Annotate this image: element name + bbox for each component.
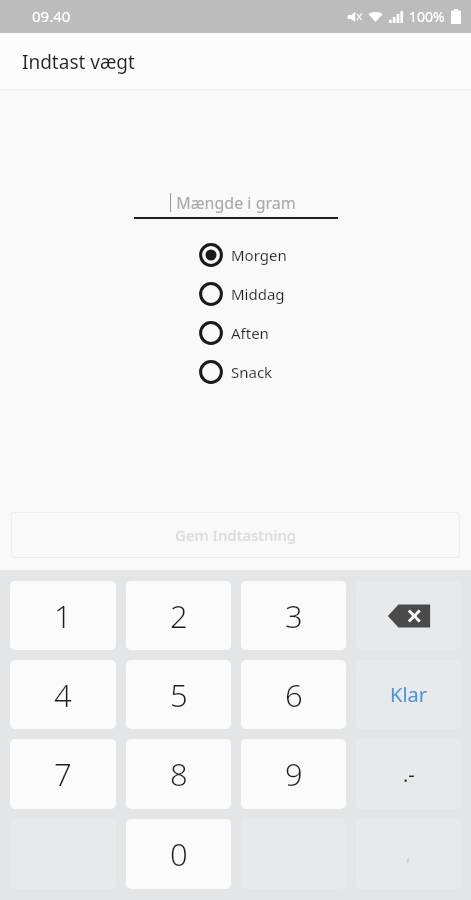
button[interactable]: Mængde i gram (134, 188, 338, 217)
staticText: 100% (409, 7, 445, 26)
button[interactable]: 5 (126, 660, 231, 729)
button[interactable]: 8 (126, 739, 231, 809)
staticText: Mængde i gram (176, 192, 296, 214)
staticText: .- (403, 761, 415, 788)
button[interactable]: 0 (126, 819, 231, 889)
button[interactable]: Morgen (0, 235, 471, 274)
button[interactable]: Aften (0, 313, 471, 352)
button[interactable]: Snack (0, 352, 471, 391)
staticText: 1 (54, 595, 72, 637)
staticText: 3 (285, 595, 303, 637)
button[interactable]: 4 (10, 660, 116, 729)
staticText: Morgen (231, 245, 287, 265)
staticText: 4 (54, 674, 72, 716)
staticText: Klar (390, 681, 428, 708)
staticText: Middag (231, 284, 285, 304)
staticText: Indtast vægt (22, 49, 135, 75)
staticText: 6 (285, 674, 303, 716)
staticText: Gem Indtastning (175, 525, 297, 545)
staticText: 09.40 (32, 6, 71, 26)
button[interactable]: Klar (356, 660, 461, 729)
button[interactable]: Gem Indtastning (11, 512, 460, 558)
button[interactable]: Middag (0, 274, 471, 313)
button[interactable]: 7 (10, 739, 116, 809)
button[interactable]: 1 (10, 581, 116, 650)
staticText: Snack (231, 362, 273, 382)
staticText: 7 (54, 753, 72, 795)
staticText: 0 (170, 833, 188, 875)
staticText: 9 (285, 753, 303, 795)
staticText: 8 (170, 753, 188, 795)
staticText: 2 (170, 595, 188, 637)
button[interactable]: 2 (126, 581, 231, 650)
button[interactable]: 3 (241, 581, 346, 650)
staticText: 5 (170, 674, 188, 716)
button[interactable]: .- (356, 739, 461, 809)
button[interactable]: 9 (241, 739, 346, 809)
button[interactable]: Backspace (356, 581, 461, 650)
staticText: , (406, 842, 411, 867)
staticText: Aften (231, 323, 269, 343)
button[interactable]: 6 (241, 660, 346, 729)
